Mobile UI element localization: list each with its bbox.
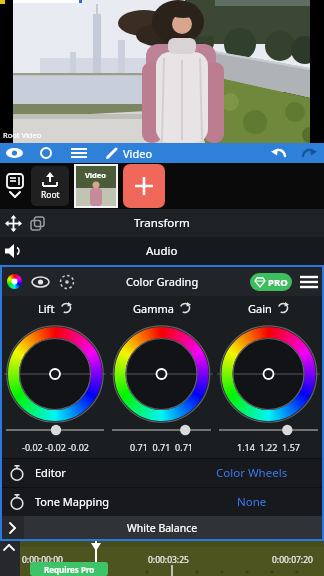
button[interactable]: [7, 274, 22, 289]
button[interactable]: White Balance: [2, 516, 322, 539]
button[interactable]: Audio: [0, 237, 324, 265]
staticText: Color Wheels: [216, 465, 288, 481]
button[interactable]: [59, 274, 75, 290]
staticText: Tone Mapping: [35, 494, 109, 509]
staticText: Transform: [134, 215, 190, 231]
button[interactable]: Requires Pro: [30, 562, 108, 576]
button[interactable]: [215, 424, 322, 436]
button[interactable]: [294, 143, 324, 163]
staticText: None: [237, 494, 267, 510]
button[interactable]: [33, 143, 59, 163]
button[interactable]: Editor: [2, 458, 322, 487]
button[interactable]: [4, 174, 26, 198]
staticText: Requires Pro: [44, 564, 95, 575]
staticText: Root: [41, 189, 60, 201]
staticText: Lift: [38, 301, 55, 316]
staticText: Editor: [35, 465, 66, 480]
button[interactable]: [0, 143, 28, 163]
button[interactable]: PRO: [250, 273, 292, 291]
button[interactable]: Gain: [248, 296, 289, 320]
button[interactable]: Tone Mapping: [2, 487, 322, 516]
staticText: PRO: [268, 276, 288, 289]
button[interactable]: Video: [105, 143, 153, 163]
staticText: 1.14 1.22 1.57: [237, 441, 300, 453]
staticText: Gain: [248, 301, 272, 316]
button[interactable]: [2, 424, 108, 436]
button[interactable]: Gamma: [133, 296, 191, 320]
staticText: 0.71 0.71 0.71: [130, 441, 193, 453]
staticText: Audio: [146, 243, 178, 259]
staticText: White Balance: [127, 521, 198, 535]
staticText: Color Grading: [126, 274, 199, 289]
staticText: -0.02 -0.02 -0.02: [22, 441, 89, 453]
button[interactable]: Video: [74, 164, 118, 208]
staticText: 0:00:07:20: [272, 554, 313, 566]
button[interactable]: [300, 275, 318, 289]
button[interactable]: Transform: [0, 209, 324, 237]
button[interactable]: [32, 276, 49, 288]
button[interactable]: [108, 424, 215, 436]
button[interactable]: [123, 164, 165, 208]
staticText: 0:00:00:00: [22, 554, 63, 566]
staticText: Gamma: [133, 301, 174, 316]
staticText: Root Video: [3, 130, 42, 140]
button[interactable]: Root: [31, 166, 69, 206]
staticText: Video: [85, 170, 107, 180]
button[interactable]: Lift: [38, 296, 72, 320]
button[interactable]: [264, 143, 294, 163]
staticText: 0:00:03:25: [148, 554, 189, 566]
staticText: Video: [123, 146, 153, 161]
button[interactable]: [65, 143, 93, 163]
